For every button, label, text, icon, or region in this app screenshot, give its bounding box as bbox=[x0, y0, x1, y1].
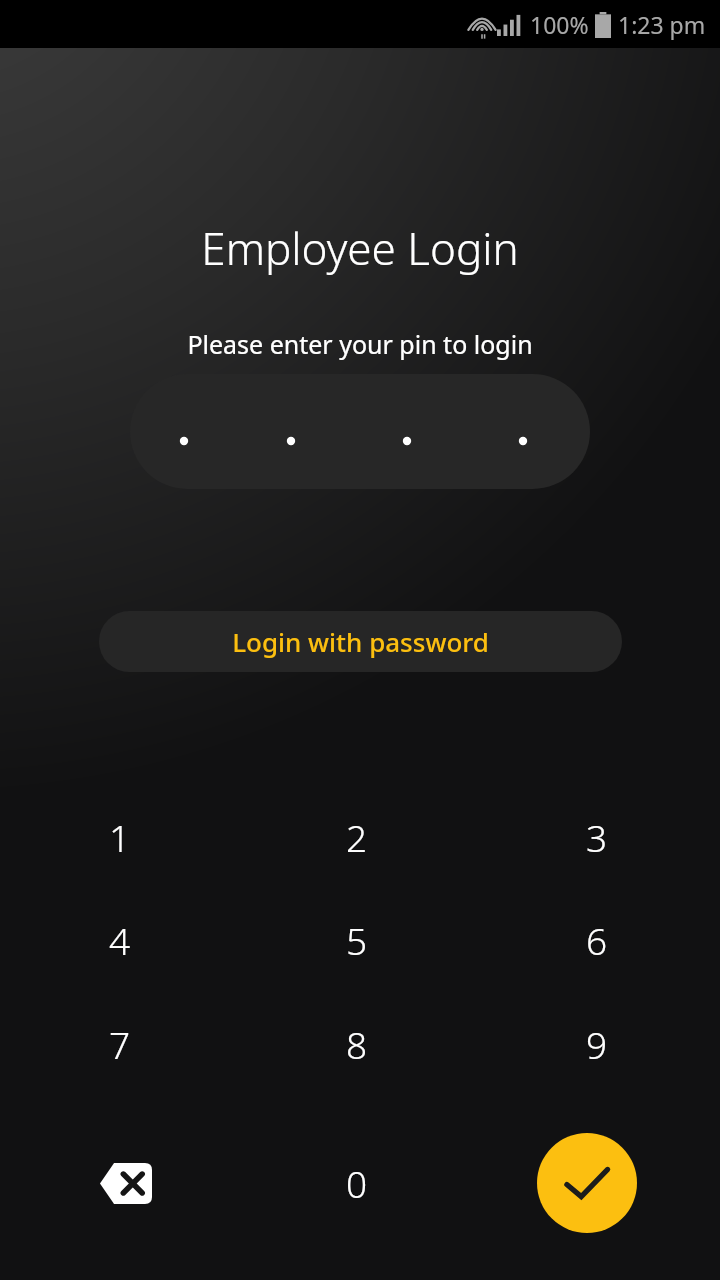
staticText: Please enter your pin to login bbox=[0, 327, 720, 361]
staticText: 3 bbox=[586, 812, 608, 862]
staticText: 5 bbox=[346, 915, 368, 965]
staticText: 8 bbox=[346, 1019, 368, 1069]
staticText: 4 bbox=[109, 915, 131, 965]
button[interactable] bbox=[130, 374, 590, 489]
button[interactable]: Login with password bbox=[99, 611, 622, 672]
staticText: 9 bbox=[586, 1019, 608, 1069]
staticText: 0 bbox=[346, 1158, 368, 1208]
staticText: 100% bbox=[530, 9, 589, 40]
button[interactable]: 0 bbox=[240, 1131, 474, 1235]
staticText: Login with password bbox=[232, 624, 489, 659]
button[interactable]: 6 bbox=[474, 888, 720, 992]
staticText: 6 bbox=[586, 915, 608, 965]
button[interactable]: 2 bbox=[240, 785, 474, 889]
staticText: 1:23 pm bbox=[618, 9, 706, 40]
button[interactable]: Confirm PIN bbox=[537, 1133, 637, 1233]
button[interactable]: 8 bbox=[240, 992, 474, 1096]
staticText: Employee Login bbox=[0, 218, 720, 278]
button[interactable]: 4 bbox=[0, 888, 240, 992]
button[interactable]: 9 bbox=[474, 992, 720, 1096]
staticText: 1 bbox=[109, 812, 131, 862]
staticText: 2 bbox=[346, 812, 368, 862]
button[interactable]: 3 bbox=[474, 785, 720, 889]
button[interactable]: 7 bbox=[0, 992, 240, 1096]
button[interactable]: Backspace bbox=[0, 1131, 240, 1235]
button[interactable]: 5 bbox=[240, 888, 474, 992]
staticText: 7 bbox=[109, 1019, 131, 1069]
button[interactable]: 1 bbox=[0, 785, 240, 889]
